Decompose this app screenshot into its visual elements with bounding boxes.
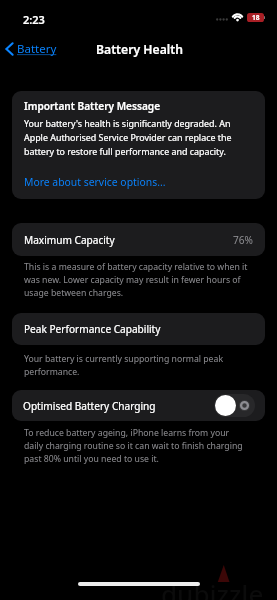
staticText: 76% [233,233,253,247]
staticText: 18 [252,13,260,22]
staticText: Your battery's health is significantly d… [24,117,253,158]
staticText: Peak Performance Capability [24,322,161,336]
staticText: Important Battery Message [24,99,161,113]
staticText: Battery Health [96,41,183,58]
button[interactable]: Important Battery Message [12,91,265,199]
staticText: 2:23 [23,12,45,27]
button[interactable]: Maximum Capacity [12,223,265,256]
staticText: dubizzle [161,576,264,600]
staticText: Your battery is currently supporting nor… [24,353,248,378]
staticText: To reduce battery ageing, iPhone learns … [24,427,248,465]
button[interactable]: Optimised Battery Charging [12,390,265,421]
button[interactable]: Optimised Battery Charging toggle [214,394,255,417]
button[interactable]: More about service options... [24,175,166,189]
staticText: This is a measure of battery capacity re… [24,261,248,299]
staticText: Maximum Capacity [24,233,115,247]
staticText: Optimised Battery Charging [23,399,156,413]
staticText: Battery [17,41,57,57]
button[interactable]: Battery [3,41,57,57]
button[interactable]: Peak Performance Capability [12,313,265,345]
